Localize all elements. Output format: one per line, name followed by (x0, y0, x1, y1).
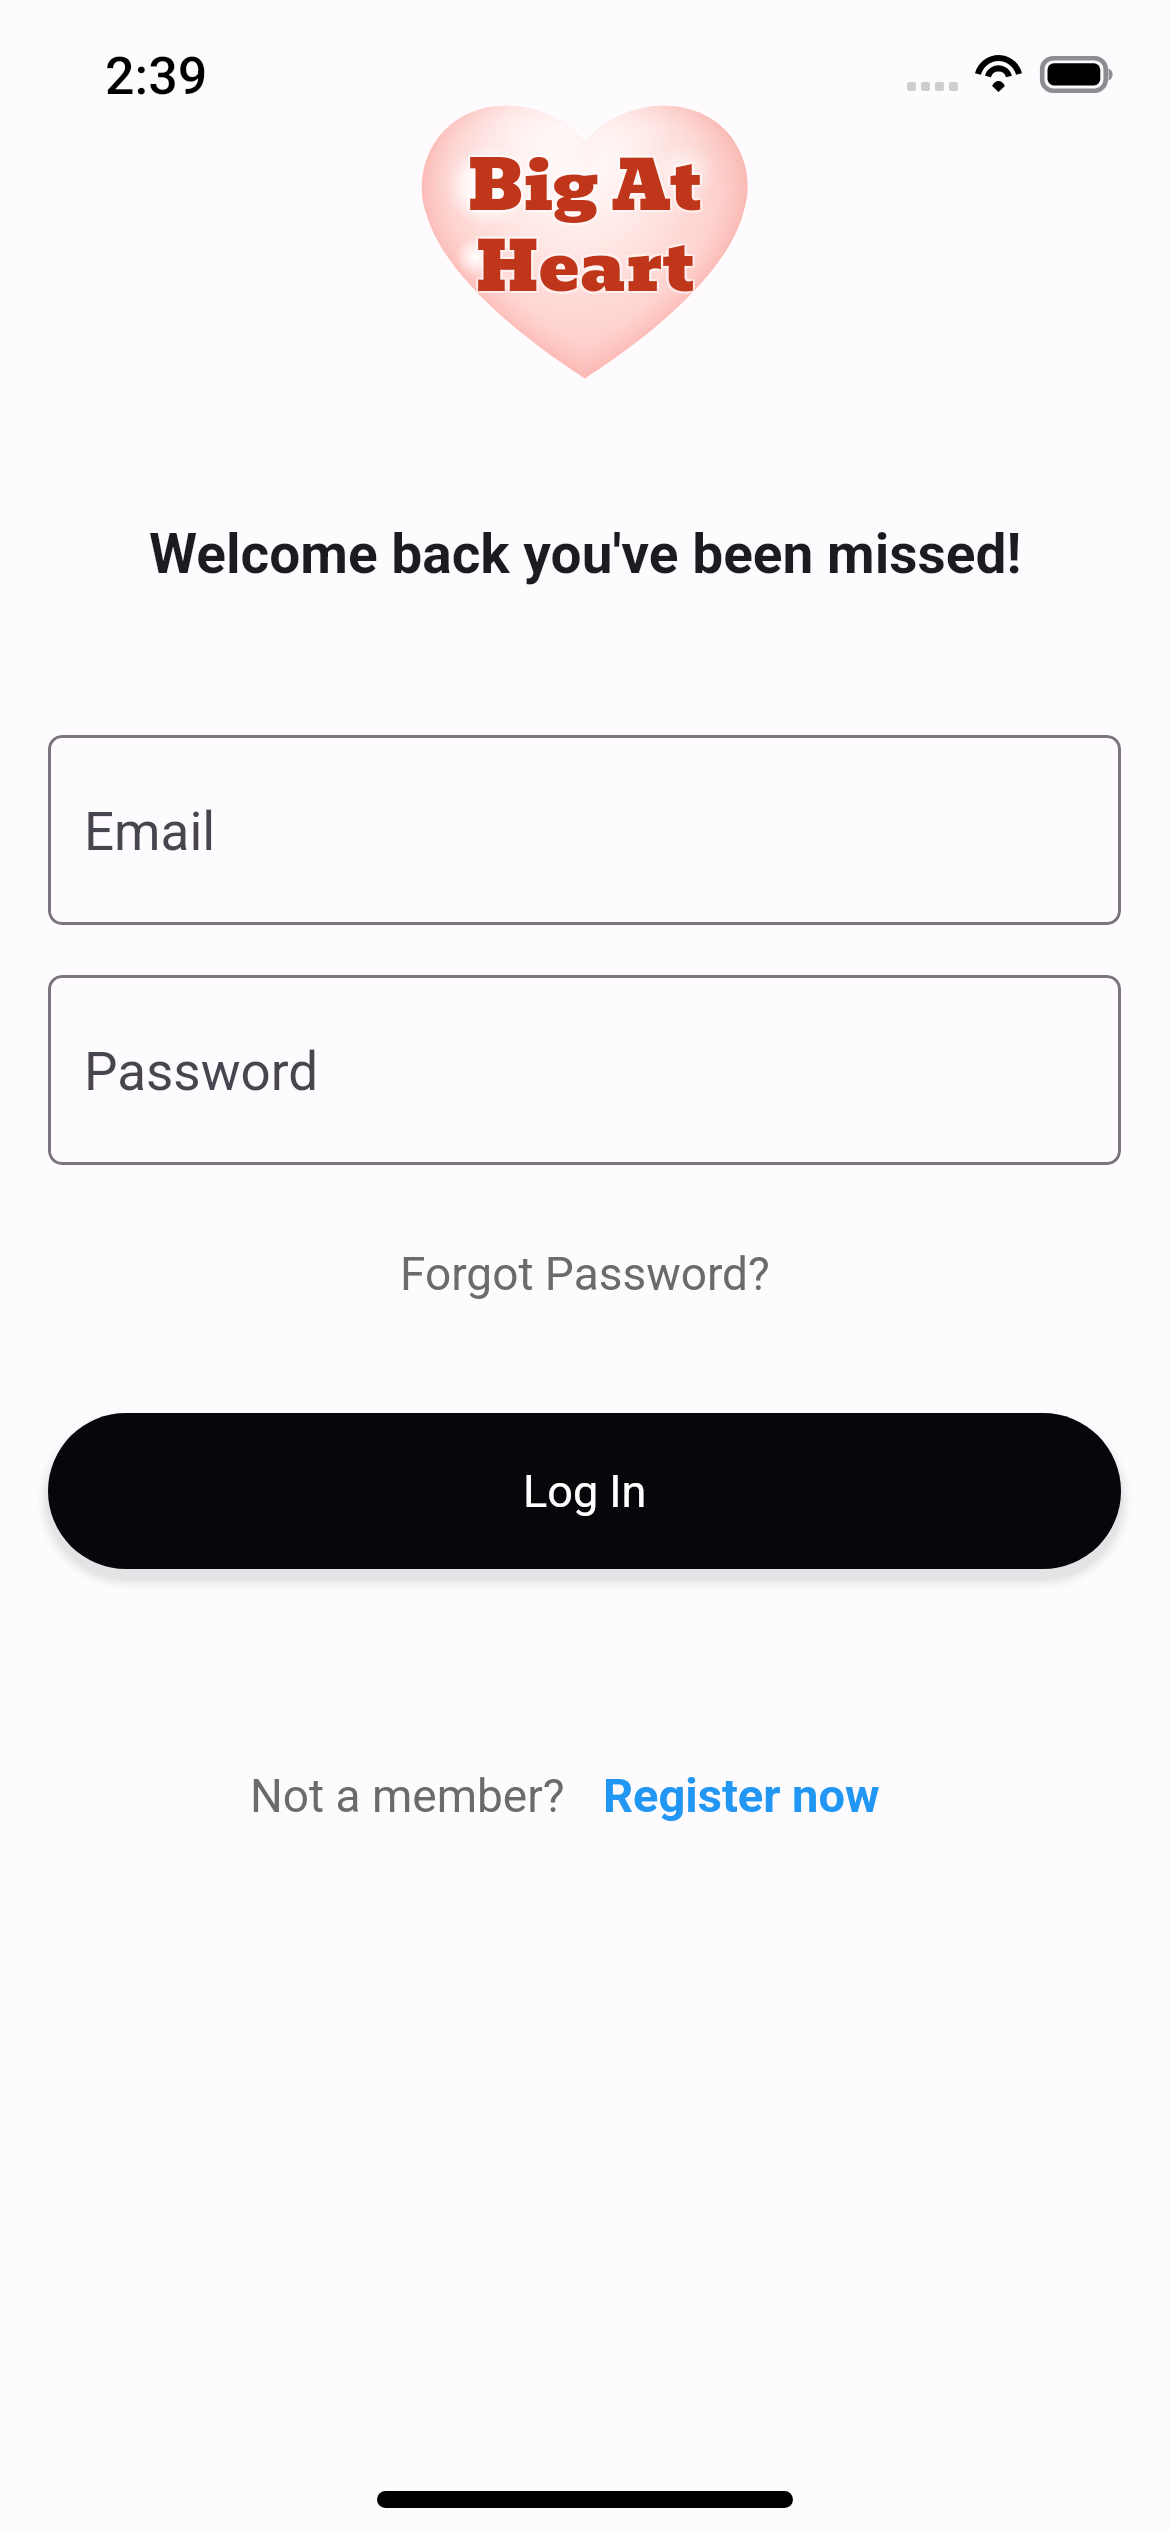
staticText: Email (84, 801, 216, 863)
staticText: Register now (603, 1768, 880, 1823)
button[interactable]: Password (48, 975, 1121, 1165)
staticText: Welcome back you've been missed! (149, 522, 1022, 586)
staticText: Heart (474, 214, 693, 323)
staticText: Heart (476, 212, 695, 321)
staticText: Big At (466, 133, 700, 242)
staticText: Heart (478, 214, 697, 323)
staticText: Password (84, 1041, 319, 1103)
button[interactable]: Email (48, 735, 1121, 925)
staticText: 2:39 (105, 46, 208, 107)
button[interactable]: Log In (48, 1413, 1121, 1569)
other: Wi-Fi (975, 55, 1022, 92)
staticText: Big At (466, 129, 700, 238)
staticText: Big At (468, 131, 702, 240)
staticText: Forgot Password? (400, 1247, 770, 1301)
staticText: Log In (523, 1465, 647, 1518)
staticText: Big At (470, 129, 704, 238)
staticText: Big At (470, 133, 704, 242)
button[interactable]: Register now (599, 1760, 884, 1831)
other: Battery full (1038, 54, 1118, 94)
staticText: Heart (474, 210, 693, 319)
staticText: Not a member? (250, 1769, 565, 1823)
staticText: Heart (478, 210, 697, 319)
button[interactable]: Forgot Password? (382, 1237, 788, 1311)
